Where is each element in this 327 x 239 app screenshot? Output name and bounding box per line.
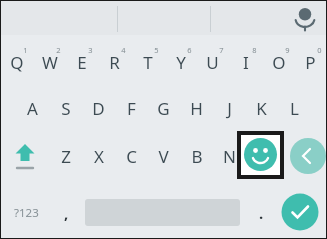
staticText: 6 (187, 45, 192, 55)
staticText: C (126, 145, 137, 168)
button[interactable]: Shift (8, 134, 42, 178)
button[interactable]: U (196, 41, 229, 83)
staticText: Y (176, 51, 186, 74)
button[interactable]: R (98, 41, 131, 83)
button[interactable]: B (180, 135, 213, 177)
staticText: R (109, 51, 120, 74)
staticText: Q (10, 51, 24, 74)
staticText: 9 (285, 45, 290, 55)
staticText: N (223, 145, 236, 168)
staticText: J (227, 97, 232, 120)
button[interactable]: Z (49, 135, 82, 177)
staticText: V (158, 145, 169, 168)
button[interactable]: N (213, 135, 246, 177)
button[interactable]: C (115, 135, 148, 177)
staticText: . (259, 203, 264, 223)
staticText: A (27, 97, 38, 120)
staticText: 8 (252, 45, 257, 55)
button[interactable]: Comma (52, 195, 80, 231)
staticText: 3 (88, 45, 93, 55)
button[interactable]: J (213, 87, 246, 129)
button[interactable]: D (82, 87, 115, 129)
button[interactable]: K (245, 87, 278, 129)
staticText: K (256, 97, 267, 120)
button[interactable]: Y (164, 41, 197, 83)
staticText: L (290, 97, 299, 120)
staticText: 5 (154, 45, 159, 55)
button[interactable]: L (278, 87, 311, 129)
button[interactable]: Emoji (243, 137, 278, 172)
staticText: W (42, 51, 58, 74)
staticText: ?123 (14, 205, 39, 221)
staticText: H (190, 97, 203, 120)
staticText: 0 (317, 45, 322, 55)
button[interactable]: W (33, 41, 66, 83)
button[interactable]: S (49, 87, 82, 129)
button[interactable]: Voice input (290, 3, 320, 33)
button[interactable]: Symbols (6, 195, 46, 231)
button[interactable]: Period (248, 195, 274, 231)
staticText: P (305, 51, 316, 74)
button[interactable]: G (147, 87, 180, 129)
staticText: S (61, 97, 71, 120)
staticText: E (77, 51, 87, 74)
staticText: D (92, 97, 105, 120)
staticText: U (206, 51, 219, 74)
staticText: I (243, 51, 249, 74)
staticText: O (272, 51, 286, 74)
button[interactable]: T (131, 41, 164, 83)
staticText: X (94, 145, 104, 168)
button[interactable]: F (115, 87, 148, 129)
staticText: 7 (219, 45, 224, 55)
button[interactable]: A (16, 87, 49, 129)
staticText: 2 (56, 45, 61, 55)
button[interactable]: Q (0, 41, 33, 83)
staticText: 1 (23, 45, 28, 55)
button[interactable]: Back (288, 137, 326, 175)
button[interactable]: P (294, 41, 327, 83)
button[interactable]: Enter (281, 193, 319, 231)
staticText: T (143, 51, 153, 74)
button[interactable]: O (262, 41, 295, 83)
button[interactable]: E (65, 41, 98, 83)
button[interactable]: H (180, 87, 213, 129)
button[interactable]: X (82, 135, 115, 177)
staticText: 4 (121, 45, 126, 55)
staticText: G (157, 97, 170, 120)
staticText: , (64, 203, 69, 223)
button[interactable]: I (229, 41, 262, 83)
staticText: B (191, 145, 203, 168)
staticText: F (127, 97, 136, 120)
button[interactable]: V (147, 135, 180, 177)
staticText: Z (61, 145, 71, 168)
